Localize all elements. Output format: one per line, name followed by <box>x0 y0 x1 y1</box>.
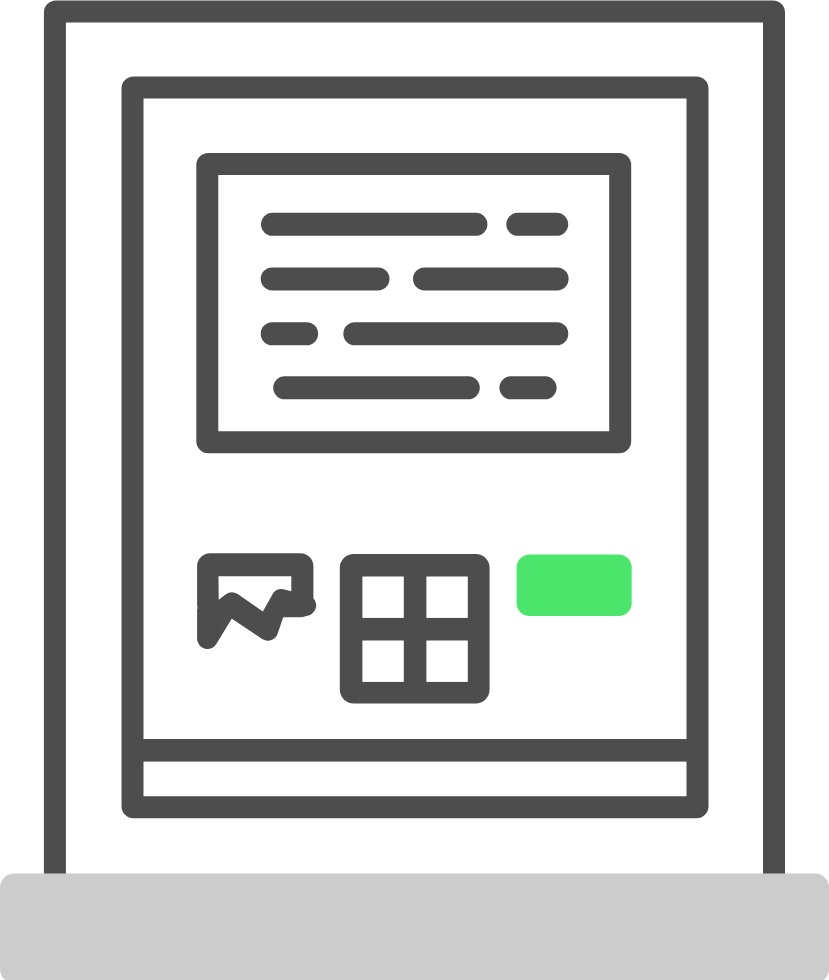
button[interactable]: Apply <box>517 555 632 617</box>
button[interactable]: Document content <box>196 153 631 453</box>
button[interactable]: Insert image <box>197 553 313 648</box>
button[interactable]: Choose layout <box>340 554 490 704</box>
